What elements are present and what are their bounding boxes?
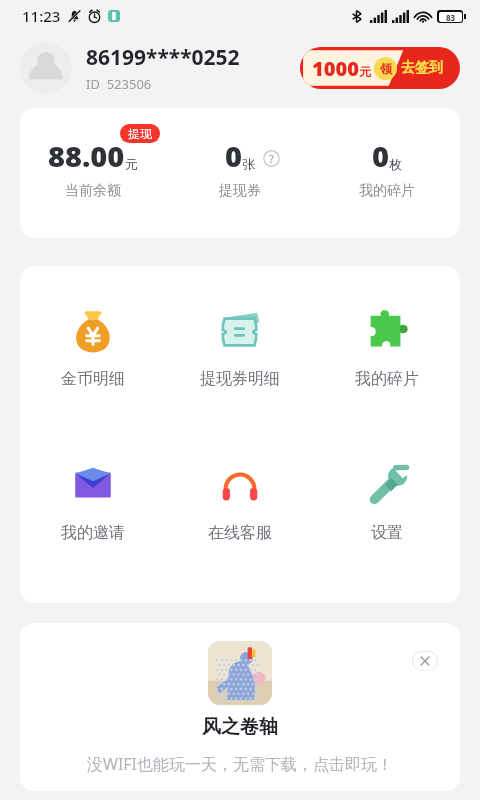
staticText: 金币明细 [61, 369, 125, 389]
staticText: 元 [125, 156, 138, 172]
button[interactable]: 我的邀请 [20, 462, 166, 543]
staticText: 83 [446, 12, 456, 22]
button[interactable]: 1000 [300, 47, 460, 89]
button[interactable]: Avatar [20, 42, 72, 94]
button[interactable]: Close ad [412, 651, 438, 671]
button[interactable]: 在线客服 [166, 462, 313, 543]
button[interactable]: 提现 [120, 124, 160, 143]
staticText: 提现券明细 [200, 369, 280, 389]
staticText: 张 [242, 156, 255, 172]
staticText: ID 523506 [86, 75, 152, 93]
staticText: 去签到 [401, 59, 443, 77]
staticText: ? [269, 151, 274, 166]
staticText: 1000 [312, 55, 359, 82]
staticText: 我的邀请 [61, 523, 125, 543]
staticText: 我的碎片 [359, 182, 415, 200]
button[interactable]: 提现券明细 [166, 308, 313, 389]
staticText: 我的碎片 [355, 369, 419, 389]
staticText: 枚 [389, 156, 402, 172]
staticText: 提现 [128, 126, 152, 141]
staticText: 0 [225, 136, 242, 175]
staticText: 88.00 [48, 136, 125, 175]
staticText: 风之卷轴 [202, 715, 278, 739]
button[interactable]: 风之卷轴 [20, 623, 460, 791]
button[interactable]: 金币明细 [20, 308, 166, 389]
button[interactable]: 设置 [313, 462, 460, 543]
staticText: 没WIFI也能玩一天，无需下载，点击即玩！ [87, 753, 394, 775]
staticText: 元 [359, 64, 371, 79]
button[interactable]: Help [263, 150, 280, 167]
button[interactable]: 我的碎片 [313, 308, 460, 389]
staticText: 当前余额 [65, 182, 121, 200]
staticText: 在线客服 [208, 523, 272, 543]
staticText: 领 [380, 61, 392, 76]
staticText: 11:23 [22, 6, 61, 26]
staticText: 提现券 [219, 182, 261, 200]
staticText: 设置 [371, 523, 403, 543]
staticText: 86199****0252 [86, 43, 240, 72]
staticText: 0 [372, 136, 389, 175]
